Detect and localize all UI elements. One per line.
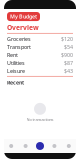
button[interactable]: More — [62, 144, 76, 148]
button[interactable]: Home — [4, 144, 18, 148]
staticText: My Budget — [10, 13, 37, 20]
staticText: $54 — [64, 43, 73, 50]
staticText: Recent — [7, 79, 24, 86]
staticText: Utilities — [7, 59, 25, 66]
staticText: Rent — [7, 51, 18, 58]
staticText: $87 — [64, 59, 73, 66]
staticText: Leisure — [7, 67, 25, 74]
button[interactable]: Stats — [18, 144, 33, 148]
staticText: $120 — [61, 35, 73, 42]
staticText: Groceries — [7, 35, 31, 42]
staticText: Transport — [7, 43, 31, 50]
staticText: $900 — [61, 51, 73, 58]
button[interactable]: Add — [33, 142, 47, 150]
staticText: $43 — [64, 67, 73, 74]
staticText: Overview — [7, 23, 39, 32]
button[interactable]: Cards — [47, 144, 62, 148]
staticText: No transactions — [26, 117, 53, 122]
